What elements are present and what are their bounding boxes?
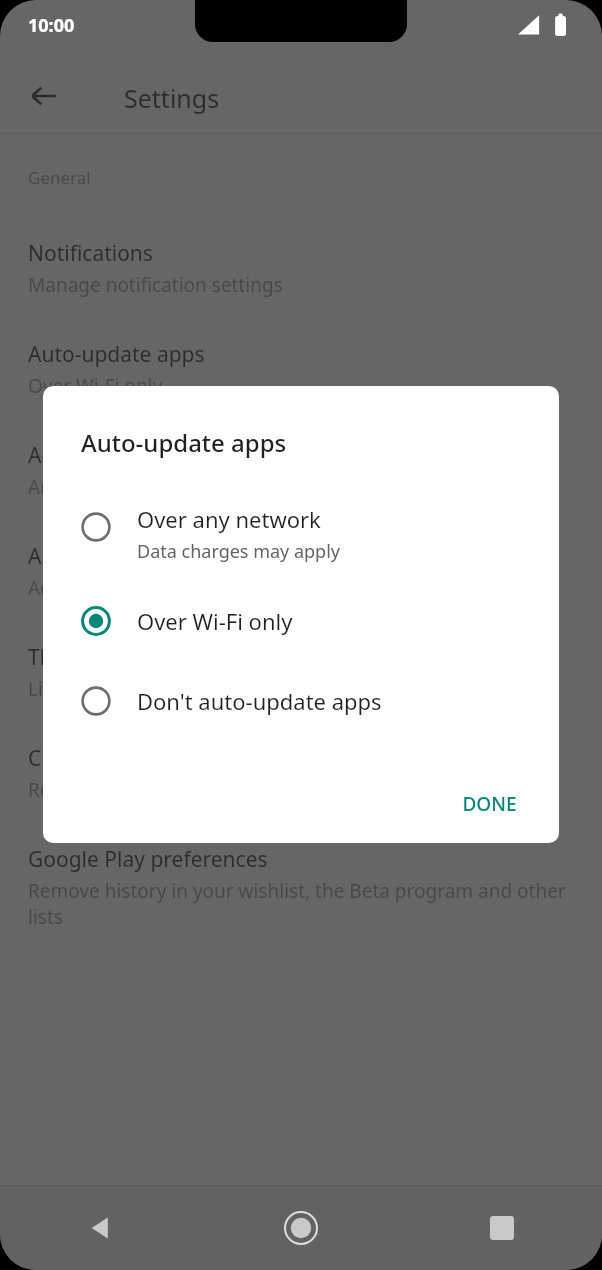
- button[interactable]: Back: [0, 1186, 200, 1270]
- staticText: General: [28, 166, 91, 189]
- button[interactable]: Auto-add widgets: [0, 542, 602, 643]
- staticText: Notifications: [28, 239, 153, 268]
- staticText: And new apps: [28, 474, 154, 500]
- staticText: Remove history in your wishlist, the Bet…: [28, 878, 574, 930]
- staticText: Data charges may apply: [137, 539, 341, 564]
- button[interactable]: Back: [20, 72, 68, 120]
- staticText: Remove searches that you have performed …: [28, 777, 559, 803]
- staticText: Over Wi-Fi only: [137, 606, 293, 636]
- staticText: Theme: [28, 643, 96, 672]
- staticText: Google Play preferences: [28, 845, 268, 874]
- staticText: Manage notification settings: [28, 272, 283, 298]
- staticText: Auto-add widgets: [28, 542, 202, 571]
- staticText: Over Wi-Fi only: [28, 373, 163, 399]
- button[interactable]: Google Play preferences: [0, 845, 602, 972]
- button[interactable]: Home: [200, 1186, 401, 1270]
- staticText: Add widgets to Home screen: [28, 575, 285, 601]
- button[interactable]: Notifications: [0, 239, 602, 340]
- button[interactable]: Add icon to Home screen: [0, 441, 602, 542]
- staticText: Settings: [124, 81, 220, 115]
- button[interactable]: Over Wi-Fi only: [43, 598, 559, 644]
- staticText: 10:00: [28, 13, 75, 38]
- button[interactable]: Recent apps: [401, 1186, 602, 1270]
- staticText: Over any network: [137, 504, 321, 534]
- staticText: Light: [28, 676, 74, 702]
- staticText: Auto-update apps: [28, 340, 205, 369]
- button[interactable]: Theme: [0, 643, 602, 744]
- button[interactable]: Auto-update apps: [0, 340, 602, 441]
- staticText: DONE: [462, 791, 517, 817]
- staticText: Auto-update apps: [81, 426, 287, 459]
- button[interactable]: Over any network: [43, 496, 559, 572]
- staticText: Clear local search history: [28, 744, 274, 773]
- button[interactable]: DONE: [446, 781, 533, 827]
- button[interactable]: Clear local search history: [0, 744, 602, 845]
- button[interactable]: Don't auto-update apps: [43, 678, 559, 724]
- staticText: Add icon to Home screen: [28, 441, 276, 470]
- staticText: Don't auto-update apps: [137, 686, 382, 716]
